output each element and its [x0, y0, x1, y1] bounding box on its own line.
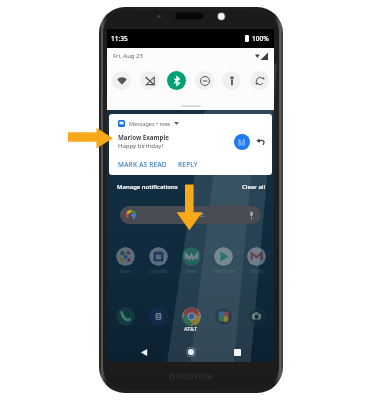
staticText: Fri, Aug 23 [113, 52, 143, 60]
staticText: motorola [169, 369, 214, 382]
button[interactable]: Calendar [149, 247, 168, 266]
staticText: Gmail [250, 268, 263, 274]
button[interactable]: Photos [214, 307, 233, 326]
button[interactable]: Flashlight [222, 71, 241, 90]
staticText: REPLY [178, 160, 198, 169]
button[interactable]: Chrome [182, 307, 201, 326]
button[interactable]: Moto [182, 247, 201, 266]
button[interactable]: Gmail [247, 247, 266, 266]
staticText: 11:35 [111, 34, 128, 43]
button[interactable]: Messages [149, 307, 168, 326]
button[interactable]: REPLY [178, 159, 198, 170]
button[interactable]: Bluetooth [167, 71, 186, 90]
button[interactable]: Search [120, 206, 261, 224]
staticText: Messages • now [129, 120, 171, 127]
staticText: Clear all [242, 183, 266, 191]
button[interactable]: Clear all [242, 181, 266, 193]
button[interactable]: Reply [256, 137, 265, 146]
button[interactable]: Manage notifications [117, 181, 178, 193]
staticText: Happy birthday! [118, 142, 164, 150]
button[interactable]: Moto [116, 247, 135, 266]
button[interactable]: Recents [227, 342, 247, 362]
button[interactable]: Auto rotate [250, 71, 269, 90]
button[interactable]: Messages • now [109, 114, 272, 175]
staticText: MARK AS READ [118, 160, 167, 169]
staticText: M [238, 137, 246, 148]
staticText: AT&T [184, 325, 198, 332]
staticText: Play Store [213, 268, 234, 274]
button[interactable]: Home [181, 342, 201, 362]
staticText: Moto [119, 268, 131, 274]
button[interactable]: Mobile data off [140, 71, 159, 90]
staticText: Manage notifications [117, 183, 178, 191]
button[interactable]: Play Store [214, 247, 233, 266]
button[interactable]: Do not disturb [195, 71, 214, 90]
button[interactable]: Wi-Fi [112, 71, 131, 90]
button[interactable]: Camera [247, 307, 266, 326]
staticText: 100% [252, 34, 269, 43]
button[interactable]: Back [134, 342, 154, 362]
staticText: Calendar [149, 268, 168, 274]
staticText: Moto [185, 268, 197, 274]
staticText: Marlow Example [118, 133, 170, 141]
button[interactable]: Phone [116, 307, 135, 326]
button[interactable]: MARK AS READ [118, 159, 167, 170]
staticText: Google [180, 210, 204, 220]
